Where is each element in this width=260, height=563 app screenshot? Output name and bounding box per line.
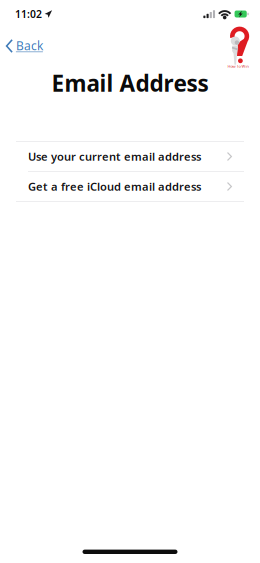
button[interactable]: Back (0, 36, 49, 56)
staticText: How To Win (227, 63, 248, 69)
staticText: Back (16, 37, 43, 54)
staticText: 11:02 (15, 7, 42, 21)
button[interactable]: Get a free iCloud email address (0, 172, 260, 201)
button[interactable]: Use your current email address (0, 142, 260, 171)
staticText: Email Address (51, 68, 208, 98)
button[interactable]: Help (226, 25, 250, 68)
staticText: Get a free iCloud email address (28, 179, 201, 194)
staticText: Use your current email address (28, 149, 201, 164)
